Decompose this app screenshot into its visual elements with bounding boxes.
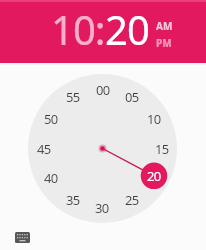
staticText: 35 <box>66 191 80 209</box>
staticText: 20 <box>105 2 149 56</box>
button[interactable]: 45 <box>31 136 57 162</box>
button[interactable]: 55 <box>60 84 86 110</box>
button[interactable]: 25 <box>119 187 145 213</box>
button[interactable]: 05 <box>119 84 145 110</box>
staticText: 25 <box>125 191 139 209</box>
button[interactable]: 20 <box>141 163 167 189</box>
staticText: 00 <box>96 81 110 99</box>
staticText: 40 <box>44 169 58 187</box>
button[interactable]: 50 <box>38 106 64 132</box>
button[interactable]: 10 <box>141 106 167 132</box>
button[interactable]: 10: <box>0 0 206 63</box>
staticText: 10: <box>51 2 105 56</box>
staticText: 20 <box>147 167 161 185</box>
button[interactable]: 40 <box>38 165 64 191</box>
button[interactable]: 35 <box>60 187 86 213</box>
button[interactable]: 00 <box>90 77 116 103</box>
button[interactable]: AM <box>156 19 173 33</box>
staticText: 55 <box>66 88 80 106</box>
staticText: 15 <box>155 140 169 158</box>
staticText: 10 <box>147 110 161 128</box>
staticText: 50 <box>44 110 58 128</box>
staticText: 05 <box>125 88 139 106</box>
button[interactable]: PM <box>156 36 172 50</box>
staticText: 45 <box>37 140 51 158</box>
button[interactable] <box>10 227 34 247</box>
button[interactable]: 15 <box>149 136 175 162</box>
staticText: 30 <box>95 199 109 217</box>
button[interactable]: 30 <box>89 195 115 221</box>
